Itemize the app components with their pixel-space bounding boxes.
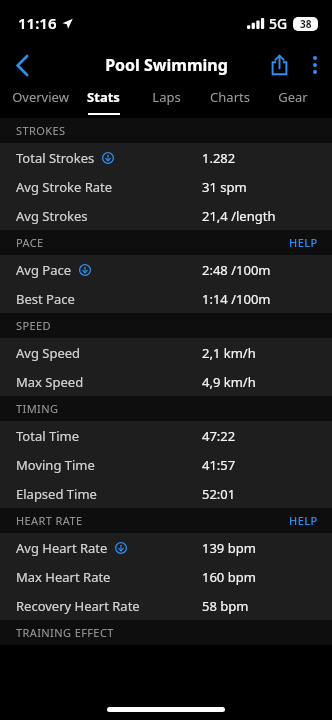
button[interactable]: Gear bbox=[261, 84, 324, 118]
staticText: Total Strokes bbox=[16, 149, 95, 167]
button[interactable]: Avg Strokes bbox=[0, 201, 332, 230]
staticText: Laps bbox=[152, 88, 181, 106]
staticText: 5G bbox=[269, 14, 288, 33]
staticText: 47:22 bbox=[202, 427, 236, 445]
staticText: Avg Heart Rate bbox=[16, 539, 108, 557]
staticText: 52:01 bbox=[202, 485, 236, 503]
staticText: Recovery Heart Rate bbox=[16, 597, 140, 615]
staticText: PACE bbox=[16, 235, 44, 250]
staticText: 2:48 /100m bbox=[202, 261, 271, 279]
staticText: Avg Strokes bbox=[16, 207, 88, 225]
button[interactable]: Recovery Heart Rate bbox=[0, 591, 332, 620]
staticText: HEART RATE bbox=[16, 513, 83, 528]
button[interactable]: Overview bbox=[8, 84, 72, 118]
staticText: Pool Swimming bbox=[105, 54, 228, 76]
staticText: 4,9 km/h bbox=[202, 373, 256, 391]
button[interactable]: Avg Heart Rate bbox=[0, 533, 332, 562]
staticText: Gear bbox=[278, 88, 308, 106]
staticText: 38 bbox=[300, 17, 312, 31]
button[interactable]: Share bbox=[260, 46, 298, 84]
button[interactable]: Total Strokes bbox=[0, 143, 332, 172]
button[interactable]: Total Time bbox=[0, 421, 332, 450]
button[interactable]: Elapsed Time bbox=[0, 479, 332, 508]
staticText: 31 spm bbox=[202, 178, 247, 196]
button[interactable]: Avg Stroke Rate bbox=[0, 172, 332, 201]
staticText: 2,1 km/h bbox=[202, 344, 256, 362]
staticText: STROKES bbox=[16, 123, 66, 138]
staticText: Elapsed Time bbox=[16, 485, 97, 503]
staticText: TIMING bbox=[16, 401, 59, 416]
staticText: 21,4 /length bbox=[202, 207, 276, 225]
button[interactable]: Avg Speed bbox=[0, 338, 332, 367]
staticText: Overview bbox=[12, 88, 69, 106]
staticText: HELP bbox=[289, 513, 318, 528]
staticText: Avg Speed bbox=[16, 344, 81, 362]
button[interactable]: HELP bbox=[275, 508, 332, 533]
staticText: Max Heart Rate bbox=[16, 568, 111, 586]
staticText: 139 bpm bbox=[202, 539, 256, 557]
staticText: Total Time bbox=[16, 427, 79, 445]
button[interactable]: Best Pace bbox=[0, 284, 332, 313]
button[interactable]: HELP bbox=[275, 230, 332, 255]
staticText: Stats bbox=[87, 88, 120, 106]
staticText: Best Pace bbox=[16, 290, 75, 308]
button[interactable]: Laps bbox=[135, 84, 198, 118]
staticText: 58 bpm bbox=[202, 597, 249, 615]
staticText: Moving Time bbox=[16, 456, 95, 474]
staticText: 1:14 /100m bbox=[202, 290, 271, 308]
staticText: HELP bbox=[289, 235, 318, 250]
button[interactable]: Max Speed bbox=[0, 367, 332, 396]
button[interactable]: Moving Time bbox=[0, 450, 332, 479]
button[interactable]: Stats bbox=[72, 84, 135, 118]
button[interactable]: Back bbox=[0, 46, 44, 84]
staticText: SPEED bbox=[16, 318, 51, 333]
staticText: Avg Stroke Rate bbox=[16, 178, 113, 196]
button[interactable]: Max Heart Rate bbox=[0, 562, 332, 591]
button[interactable]: More options bbox=[298, 46, 332, 84]
staticText: 41:57 bbox=[202, 456, 236, 474]
staticText: Charts bbox=[210, 88, 250, 106]
button[interactable]: Avg Pace bbox=[0, 255, 332, 284]
button[interactable]: Charts bbox=[198, 84, 261, 118]
staticText: 1.282 bbox=[202, 149, 236, 167]
staticText: 160 bpm bbox=[202, 568, 256, 586]
staticText: TRAINING EFFECT bbox=[16, 625, 114, 640]
staticText: Max Speed bbox=[16, 373, 84, 391]
staticText: 11:16 bbox=[18, 13, 57, 33]
staticText: Avg Pace bbox=[16, 261, 72, 279]
